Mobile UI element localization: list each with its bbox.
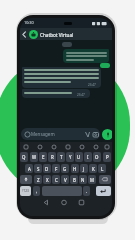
button[interactable]: .	[83, 186, 90, 196]
button[interactable]: V	[61, 175, 69, 184]
button[interactable]: M	[88, 175, 96, 184]
staticText: P	[106, 154, 109, 160]
staticText: J	[83, 166, 85, 172]
button[interactable]: R	[48, 152, 56, 162]
staticText: Chatbot Virtual	[40, 32, 74, 38]
button[interactable]: L	[98, 164, 106, 173]
button[interactable]: S	[34, 164, 42, 173]
staticText: .	[86, 188, 88, 194]
button[interactable]: T	[57, 152, 65, 162]
button[interactable]: G	[61, 164, 69, 173]
button[interactable]: U	[75, 152, 83, 162]
staticText: M	[90, 177, 94, 183]
button[interactable]	[63, 49, 109, 63]
button[interactable]: I	[84, 152, 92, 162]
staticText: Y	[69, 154, 72, 160]
staticText: O	[95, 154, 99, 160]
button[interactable]	[96, 186, 111, 196]
staticText: 10:30	[24, 20, 34, 25]
staticText: L	[101, 166, 104, 172]
staticText: 23:47	[88, 83, 96, 87]
button[interactable]	[20, 198, 112, 208]
button[interactable]: J	[80, 164, 88, 173]
staticText: B	[73, 177, 76, 183]
button[interactable]: C	[52, 175, 60, 184]
staticText: ?123	[22, 189, 29, 193]
button[interactable]: A	[25, 164, 33, 173]
staticText: Z	[37, 177, 40, 183]
staticText: D	[45, 166, 49, 172]
button[interactable]: W	[30, 152, 38, 162]
staticText: 23:47	[77, 93, 85, 97]
button[interactable]	[22, 89, 90, 98]
button[interactable]: Chatbot Virtual	[22, 29, 110, 40]
staticText: A	[28, 166, 31, 172]
staticText: N	[81, 177, 85, 183]
button[interactable]	[102, 129, 112, 140]
staticText: H	[73, 166, 77, 172]
button[interactable]	[20, 186, 31, 196]
button[interactable]: E	[39, 152, 47, 162]
button[interactable]: Q	[20, 152, 28, 162]
staticText: V	[64, 177, 67, 183]
staticText: E	[42, 154, 45, 160]
button[interactable]: K	[89, 164, 97, 173]
staticText: C	[55, 177, 58, 183]
button[interactable]: Y	[66, 152, 74, 162]
button[interactable]: D	[43, 164, 51, 173]
button[interactable]: ,	[33, 186, 40, 196]
staticText: T	[60, 154, 63, 160]
button[interactable]	[99, 175, 111, 184]
staticText: G	[63, 166, 67, 172]
button[interactable]	[21, 128, 100, 140]
staticText: Mensagem	[31, 131, 55, 137]
button[interactable]: H	[71, 164, 79, 173]
button[interactable]: N	[79, 175, 87, 184]
staticText: S	[37, 166, 40, 172]
staticText: K	[92, 166, 95, 172]
button[interactable]	[20, 175, 32, 184]
button[interactable]: B	[70, 175, 78, 184]
button[interactable]: P	[103, 152, 111, 162]
staticText: U	[77, 154, 81, 160]
button[interactable]	[42, 186, 82, 196]
button[interactable]: F	[52, 164, 60, 173]
button[interactable]: X	[43, 175, 51, 184]
staticText: W	[32, 154, 37, 160]
button[interactable]: O	[93, 152, 101, 162]
staticText: X	[46, 177, 49, 183]
staticText: I	[87, 154, 89, 160]
staticText: R	[51, 154, 54, 160]
staticText: F	[55, 166, 58, 172]
button[interactable]	[22, 67, 101, 88]
staticText: Q	[22, 154, 26, 160]
staticText: ,	[36, 188, 38, 194]
button[interactable]: Z	[34, 175, 42, 184]
